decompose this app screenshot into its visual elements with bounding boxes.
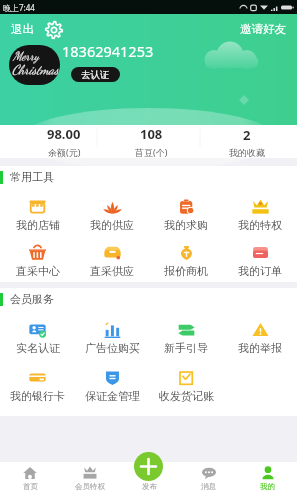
staticText: 晚上7:44 xyxy=(3,2,35,13)
button[interactable]: 保证金管理 xyxy=(75,359,149,407)
staticText: 实名认证 xyxy=(16,341,60,355)
button[interactable]: 首页 xyxy=(0,462,60,495)
button[interactable]: 我的特权 xyxy=(223,188,297,234)
staticText: 我的店铺 xyxy=(16,218,60,232)
staticText: 我的 xyxy=(260,482,275,491)
staticText: 报价商机 xyxy=(164,264,208,278)
staticText: 直采中心 xyxy=(16,264,60,278)
staticText: 常用工具 xyxy=(10,170,54,184)
button[interactable]: 设置 xyxy=(44,20,63,39)
staticText: 我的订单 xyxy=(238,264,282,278)
button[interactable]: 邀请好友 xyxy=(240,20,286,38)
staticText: 我的供应 xyxy=(90,218,134,232)
staticText: 发布 xyxy=(142,482,157,491)
staticText: Merry xyxy=(13,49,39,63)
staticText: 会员服务 xyxy=(10,292,54,306)
staticText: 我的收藏 xyxy=(229,147,265,158)
button[interactable]: 108 xyxy=(109,125,193,158)
staticText: 18362941253 xyxy=(62,41,154,61)
staticText: 新手引导 xyxy=(164,341,208,355)
button[interactable]: 98.00 xyxy=(22,125,106,158)
staticText: 消息 xyxy=(201,482,216,491)
button[interactable]: 发布 xyxy=(134,452,163,481)
staticText: 直采供应 xyxy=(90,264,134,278)
staticText: 余额(元) xyxy=(48,146,81,158)
staticText: 邀请好友 xyxy=(240,22,286,36)
staticText: Christmas xyxy=(12,62,60,78)
staticText: 苜豆(个) xyxy=(135,146,168,158)
button[interactable]: 收发货记账 xyxy=(149,359,223,407)
button[interactable]: 直采中心 xyxy=(0,234,75,280)
button[interactable]: 我的举报 xyxy=(223,311,297,359)
button[interactable]: 我的银行卡 xyxy=(0,359,75,407)
button[interactable]: 直采供应 xyxy=(75,234,149,280)
button[interactable]: 会员特权 xyxy=(60,462,120,495)
staticText: 首页 xyxy=(23,482,38,491)
button[interactable]: 去认证 xyxy=(71,67,120,82)
button[interactable]: 我的 xyxy=(238,462,297,495)
button[interactable]: 报价商机 xyxy=(149,234,223,280)
button[interactable]: 退出 xyxy=(11,20,34,38)
staticText: 会员特权 xyxy=(75,482,105,491)
button[interactable]: 广告位购买 xyxy=(75,311,149,359)
button[interactable]: 消息 xyxy=(179,462,238,495)
button[interactable]: 发布 xyxy=(120,462,179,495)
staticText: 108 xyxy=(140,125,163,143)
staticText: 我的求购 xyxy=(164,218,208,232)
button[interactable]: Merry xyxy=(9,45,60,85)
button[interactable]: 我的供应 xyxy=(75,188,149,234)
staticText: 去认证 xyxy=(81,69,110,81)
button[interactable]: 实名认证 xyxy=(0,311,75,359)
staticText: 98.00 xyxy=(47,125,81,143)
staticText: 我的特权 xyxy=(238,218,282,232)
button[interactable]: 我的求购 xyxy=(149,188,223,234)
staticText: 广告位购买 xyxy=(85,341,140,355)
staticText: 我的举报 xyxy=(238,341,282,355)
staticText: 我的银行卡 xyxy=(10,389,65,403)
button[interactable]: 我的订单 xyxy=(223,234,297,280)
button[interactable]: 新手引导 xyxy=(149,311,223,359)
button[interactable]: 2 xyxy=(205,125,289,158)
button[interactable]: 我的店铺 xyxy=(0,188,75,234)
staticText: 退出 xyxy=(11,22,34,36)
staticText: 保证金管理 xyxy=(85,389,140,403)
staticText: 2 xyxy=(243,126,251,144)
staticText: 收发货记账 xyxy=(159,389,214,403)
